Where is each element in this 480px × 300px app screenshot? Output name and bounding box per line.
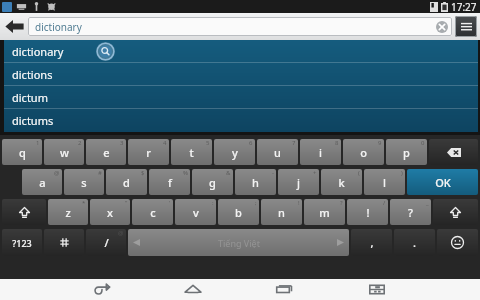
staticText: @ xyxy=(54,169,60,177)
staticText: ! xyxy=(298,199,300,207)
button[interactable]: Clear text xyxy=(435,20,449,34)
button[interactable]: Tiếng Việt xyxy=(128,229,349,256)
staticText: 0 xyxy=(421,139,425,147)
button[interactable]: ! xyxy=(347,199,388,225)
button[interactable]: f xyxy=(149,169,190,195)
button[interactable]: dictums xyxy=(4,109,478,132)
staticText: b xyxy=(235,205,242,220)
staticText: / xyxy=(383,199,386,207)
button[interactable]: Recent apps xyxy=(265,279,305,300)
button[interactable]: dictionary xyxy=(4,40,478,63)
button[interactable]: h xyxy=(235,169,276,195)
staticText: _ xyxy=(426,199,429,207)
staticText: ; xyxy=(255,199,257,207)
button[interactable]: ?123 xyxy=(2,229,42,256)
staticText: g xyxy=(209,175,216,190)
staticText: w xyxy=(60,145,69,160)
staticText: p xyxy=(403,145,410,160)
staticText: ? xyxy=(408,205,413,220)
button[interactable]: d xyxy=(106,169,147,195)
staticText: % xyxy=(183,169,188,177)
button[interactable]: r xyxy=(128,139,169,165)
staticText: dictionary xyxy=(12,44,64,59)
staticText: 8 xyxy=(335,139,339,147)
staticText: " xyxy=(125,199,128,207)
button[interactable]: y xyxy=(214,139,255,165)
button[interactable]: Delete xyxy=(429,139,478,165)
button[interactable]: ? xyxy=(390,199,431,225)
staticText: c xyxy=(150,205,156,220)
staticText: , xyxy=(370,235,374,250)
staticText: dictionary xyxy=(35,20,82,34)
button[interactable]: v xyxy=(175,199,216,225)
staticText: e xyxy=(103,145,110,160)
button[interactable]: q xyxy=(2,139,42,165)
staticText: dictions xyxy=(12,67,53,82)
button[interactable]: Back xyxy=(82,279,122,300)
button[interactable]: w xyxy=(44,139,84,165)
button[interactable]: Emoji xyxy=(437,229,478,256)
button[interactable]: p xyxy=(386,139,427,165)
staticText: dictums xyxy=(12,113,54,128)
button[interactable]: u xyxy=(257,139,298,165)
staticText: 9 xyxy=(378,139,382,147)
button[interactable]: k xyxy=(321,169,362,195)
button[interactable]: Shift xyxy=(2,199,46,225)
button[interactable]: j xyxy=(278,169,319,195)
button[interactable]: dictum xyxy=(4,86,478,109)
staticText: $ xyxy=(141,169,145,177)
button[interactable]: dictions xyxy=(4,63,478,86)
staticText: ?123 xyxy=(12,237,32,249)
staticText: f xyxy=(168,175,172,190)
staticText: Tiếng Việt xyxy=(218,237,260,249)
staticText: s xyxy=(81,175,87,190)
button[interactable]: Shift xyxy=(433,199,478,225)
staticText: l xyxy=(383,175,386,190)
staticText: u xyxy=(274,145,281,160)
button[interactable]: t xyxy=(171,139,212,165)
staticText: * xyxy=(82,199,86,207)
button[interactable]: Home xyxy=(173,279,213,300)
staticText: ' xyxy=(169,199,171,207)
staticText: n xyxy=(278,205,285,220)
staticText: d xyxy=(123,175,130,190)
button[interactable]: s xyxy=(64,169,104,195)
staticText: : xyxy=(212,199,214,207)
button[interactable]: a xyxy=(22,169,62,195)
staticText: 3 xyxy=(120,139,124,147)
button[interactable]: OK xyxy=(407,169,478,195)
button[interactable]: o xyxy=(343,139,384,165)
button[interactable]: / xyxy=(86,229,126,256)
button[interactable]: dictionary xyxy=(28,17,452,36)
staticText: x xyxy=(107,205,113,220)
staticText: q xyxy=(19,145,26,160)
staticText: 1 xyxy=(36,139,40,147)
staticText: 2 xyxy=(78,139,82,147)
button[interactable]: Change language xyxy=(44,229,84,256)
button[interactable]: g xyxy=(192,169,233,195)
button[interactable]: Back xyxy=(0,13,28,40)
staticText: dictum xyxy=(12,90,48,105)
button[interactable]: n xyxy=(261,199,302,225)
staticText: t xyxy=(189,145,194,160)
button[interactable]: . xyxy=(394,229,435,256)
button[interactable]: Menu xyxy=(455,16,477,37)
staticText: 5 xyxy=(206,139,210,147)
button[interactable]: , xyxy=(351,229,392,256)
staticText: a xyxy=(39,175,46,190)
staticText: r xyxy=(146,145,151,160)
button[interactable]: z xyxy=(48,199,88,225)
button[interactable]: Hide keyboard xyxy=(357,279,397,300)
button[interactable]: m xyxy=(304,199,345,225)
staticText: v xyxy=(193,205,199,220)
button[interactable]: c xyxy=(132,199,173,225)
staticText: . xyxy=(413,235,416,250)
staticText: 7 xyxy=(292,139,296,147)
button[interactable]: e xyxy=(86,139,126,165)
button[interactable]: i xyxy=(300,139,341,165)
button[interactable]: b xyxy=(218,199,259,225)
button[interactable]: l xyxy=(364,169,405,195)
button[interactable]: x xyxy=(90,199,130,225)
staticText: / xyxy=(104,235,109,250)
